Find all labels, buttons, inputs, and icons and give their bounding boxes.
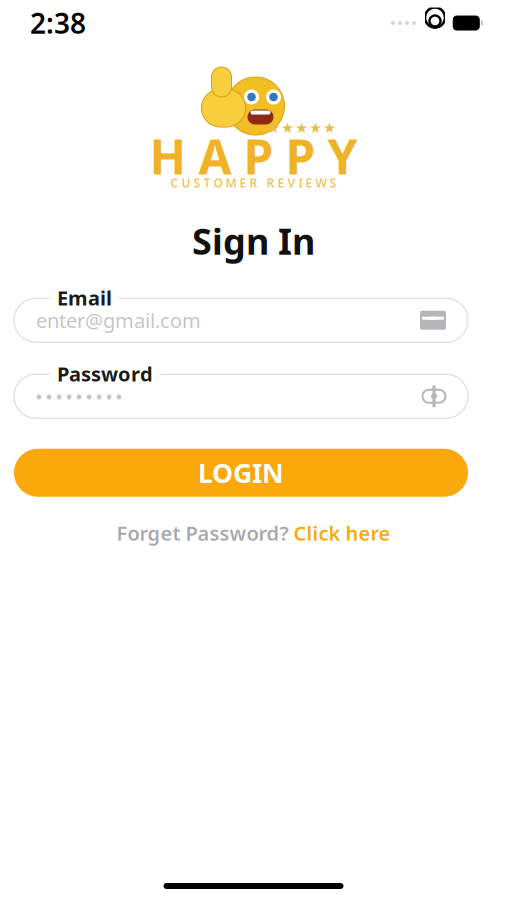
staticText: C U S T O M E R R E V I E W S	[170, 175, 336, 191]
staticText: Click here	[293, 520, 390, 546]
staticText: ★	[295, 120, 308, 136]
staticText: Password	[57, 360, 153, 387]
staticText: 2:38	[30, 4, 86, 42]
staticText: LOGIN	[198, 455, 284, 490]
staticText: ★	[323, 120, 336, 136]
button[interactable]: enter@gmail.com	[0, 285, 507, 347]
staticText: ★	[309, 120, 322, 136]
button[interactable]: LOGIN	[0, 449, 507, 497]
staticText: enter@gmail.com	[36, 307, 201, 334]
button[interactable]: • • • • • • • • •	[0, 361, 507, 423]
staticText: H A P P Y	[149, 124, 357, 188]
staticText: Sign In	[192, 217, 315, 265]
button[interactable]: Forget Password?	[102, 510, 404, 556]
staticText: ★	[267, 120, 280, 136]
staticText: • • • • • • • • •	[36, 386, 122, 407]
staticText: ★	[281, 120, 294, 136]
staticText: Forget Password?	[116, 520, 288, 546]
staticText: Email	[57, 284, 112, 311]
